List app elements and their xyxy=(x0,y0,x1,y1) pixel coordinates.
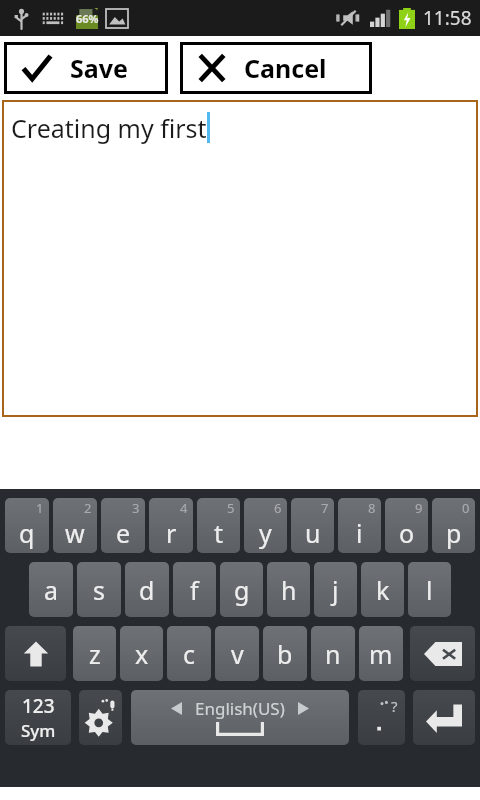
staticText: 0 xyxy=(462,499,470,517)
button[interactable]: 6 xyxy=(244,498,287,553)
button[interactable]: 2 xyxy=(53,498,97,553)
staticText: e xyxy=(116,516,131,550)
button[interactable]: Save xyxy=(4,42,168,94)
staticText: Sym xyxy=(21,719,56,742)
staticText: d xyxy=(139,573,155,607)
staticText: o xyxy=(399,516,415,550)
button[interactable]: k xyxy=(361,562,404,617)
button[interactable]: 7 xyxy=(291,498,334,553)
staticText: s xyxy=(93,573,105,607)
button[interactable]: 8 xyxy=(338,498,381,553)
staticText: f xyxy=(190,573,199,607)
staticText: 123 xyxy=(22,693,55,719)
button[interactable]: 3 xyxy=(101,498,145,553)
staticText: y xyxy=(259,516,272,550)
button[interactable]: d xyxy=(125,562,169,617)
button[interactable]: 5 xyxy=(197,498,240,553)
button[interactable]: Space, English (US) xyxy=(131,690,349,745)
button[interactable]: s xyxy=(77,562,121,617)
button[interactable]: a xyxy=(29,562,73,617)
button[interactable]: x xyxy=(120,626,163,681)
staticText: 1 xyxy=(36,499,44,517)
staticText: w xyxy=(65,516,85,550)
button[interactable]: 4 xyxy=(149,498,193,553)
staticText: 9 xyxy=(415,499,423,517)
staticText: Save xyxy=(70,51,128,85)
button[interactable]: j xyxy=(314,562,357,617)
button[interactable]: n xyxy=(311,626,355,681)
staticText: t xyxy=(214,516,224,550)
staticText: Creating my first xyxy=(11,111,207,145)
button[interactable]: 123 xyxy=(5,690,71,745)
staticText: a xyxy=(44,573,59,607)
button[interactable]: g xyxy=(220,562,263,617)
staticText: z xyxy=(89,637,101,671)
staticText: l xyxy=(426,573,433,607)
staticText: g xyxy=(234,573,250,607)
staticText: n xyxy=(325,637,341,671)
staticText: English(US) xyxy=(195,697,285,720)
button[interactable]: Creating my first xyxy=(2,100,478,417)
button[interactable]: Cancel xyxy=(180,42,372,94)
staticText: 66% xyxy=(76,11,99,26)
staticText: p xyxy=(446,516,462,550)
staticText: c xyxy=(183,637,196,671)
button[interactable]: 9 xyxy=(385,498,428,553)
staticText: 8 xyxy=(368,499,376,517)
staticText: 4 xyxy=(180,499,188,517)
staticText: 7 xyxy=(321,499,329,517)
button[interactable]: Enter xyxy=(413,690,475,745)
staticText: j xyxy=(332,573,339,607)
button[interactable]: l xyxy=(408,562,451,617)
button[interactable]: 0 xyxy=(432,498,475,553)
button[interactable]: 1 xyxy=(5,498,49,553)
staticText: 6 xyxy=(274,499,282,517)
button[interactable]: f xyxy=(173,562,216,617)
button[interactable]: m xyxy=(359,626,403,681)
staticText: x xyxy=(135,637,149,671)
staticText: Cancel xyxy=(244,51,327,85)
staticText: 3 xyxy=(132,499,140,517)
staticText: m xyxy=(369,637,393,671)
button[interactable]: b xyxy=(263,626,307,681)
staticText: u xyxy=(305,516,321,550)
staticText: r xyxy=(166,516,177,550)
staticText: i xyxy=(356,516,363,550)
staticText: 2 xyxy=(84,499,92,517)
button[interactable]: z xyxy=(73,626,116,681)
button[interactable]: v xyxy=(215,626,259,681)
staticText: ? xyxy=(391,696,398,716)
button[interactable]: Period xyxy=(358,690,405,745)
staticText: h xyxy=(281,573,297,607)
button[interactable]: Backspace xyxy=(410,626,475,681)
button[interactable]: Shift xyxy=(5,626,66,681)
staticText: 11:58 xyxy=(423,5,472,31)
button[interactable]: Settings and voice input xyxy=(79,690,122,745)
staticText: k xyxy=(376,573,390,607)
staticText: 5 xyxy=(227,499,235,517)
staticText: v xyxy=(231,637,244,671)
button[interactable]: c xyxy=(167,626,211,681)
button[interactable]: h xyxy=(267,562,310,617)
staticText: q xyxy=(19,516,35,550)
staticText: b xyxy=(277,637,293,671)
